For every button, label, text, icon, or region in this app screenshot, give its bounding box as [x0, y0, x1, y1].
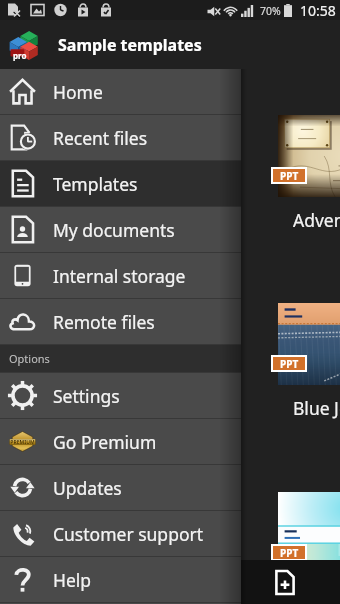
button[interactable]: Recent files	[0, 115, 241, 160]
button[interactable]: New file	[263, 560, 307, 604]
button[interactable]	[278, 303, 340, 385]
staticText: PPT	[280, 357, 299, 370]
staticText: Internal storage	[53, 264, 186, 288]
button[interactable]: My documents	[0, 207, 241, 252]
staticText: pro	[13, 50, 27, 61]
button[interactable]	[278, 115, 340, 197]
staticText: PPT	[280, 169, 299, 182]
staticText: Options	[9, 351, 50, 366]
staticText: Customer support	[53, 522, 204, 546]
button[interactable]: Remote files	[0, 299, 241, 344]
staticText: Help	[53, 568, 92, 592]
staticText: Blue Jeans	[293, 396, 340, 420]
staticText: Home	[53, 80, 103, 104]
staticText: Go Premium	[53, 430, 157, 454]
button[interactable]: PPT	[273, 169, 305, 182]
staticText: Remote files	[53, 310, 155, 334]
button[interactable]: PPT	[273, 546, 305, 559]
staticText: Recent files	[53, 126, 148, 150]
staticText: 70%	[260, 4, 281, 18]
button[interactable]: Internal storage	[0, 253, 241, 298]
button[interactable]	[278, 492, 340, 574]
button[interactable]: Customer support	[0, 511, 241, 556]
staticText: My documents	[53, 218, 175, 242]
staticText: PREMIUM	[10, 439, 35, 446]
staticText: Sample templates	[58, 34, 202, 56]
button[interactable]: PPT	[273, 357, 305, 370]
staticText: PPT	[280, 546, 299, 559]
button[interactable]: Templates	[0, 161, 241, 206]
staticText: Templates	[53, 172, 138, 196]
staticText: Adventure	[293, 208, 340, 232]
button[interactable]: Open navigation drawer	[0, 21, 48, 69]
staticText: Updates	[53, 476, 122, 500]
button[interactable]: Settings	[0, 373, 241, 418]
button[interactable]: Help	[0, 557, 241, 602]
button[interactable]: PREMIUM	[0, 419, 241, 464]
staticText: 10:58	[300, 1, 336, 20]
button[interactable]: Updates	[0, 465, 241, 510]
button[interactable]: Home	[0, 69, 241, 114]
staticText: Settings	[53, 384, 120, 408]
